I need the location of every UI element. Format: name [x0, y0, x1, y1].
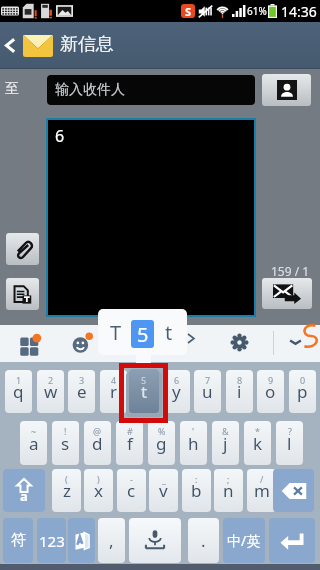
staticText: 6 [174, 374, 180, 386]
staticText: f [127, 432, 133, 455]
button[interactable]: 6 [163, 370, 190, 413]
button[interactable]: 2 [37, 370, 64, 413]
staticText: e [77, 380, 87, 403]
staticText: ? [288, 425, 292, 437]
button[interactable]: 3 [68, 370, 95, 413]
button[interactable]: ) [84, 469, 113, 512]
staticText: 5 [137, 321, 149, 348]
button[interactable]: Shift [3, 469, 45, 512]
staticText: a [20, 487, 28, 505]
staticText: v [159, 479, 168, 502]
staticText: 14:36 [281, 2, 317, 21]
button[interactable]: 5 [129, 369, 159, 413]
staticText: ' [192, 425, 195, 437]
staticText: t [141, 380, 148, 403]
staticText: r [110, 380, 118, 403]
staticText: x [94, 479, 103, 502]
button[interactable]: ? [276, 421, 303, 465]
button[interactable]: / [247, 469, 276, 512]
button[interactable]: _ [149, 469, 178, 512]
button[interactable]: % [148, 421, 175, 465]
staticText: % [158, 425, 166, 437]
button[interactable]: 0 [289, 370, 316, 413]
staticText: z [63, 479, 71, 502]
staticText: 符 [11, 531, 26, 550]
button[interactable]: Backspace [273, 469, 314, 512]
staticText: . [201, 529, 206, 552]
button[interactable]: Contacts [262, 74, 311, 106]
button[interactable]: ( [52, 469, 81, 512]
button[interactable]: Attach [6, 233, 39, 265]
staticText: ( [65, 473, 68, 485]
button[interactable]: Settings [231, 334, 248, 351]
button[interactable]: - [117, 469, 146, 512]
button[interactable]: & [212, 421, 239, 465]
staticText: 123 [39, 531, 65, 551]
button[interactable]: 9 [257, 370, 284, 413]
staticText: 7 [205, 374, 211, 386]
staticText: : [195, 473, 198, 485]
button[interactable]: 7 [194, 370, 221, 413]
staticText: 2 [48, 374, 54, 386]
button[interactable]: ! [52, 421, 79, 465]
button[interactable]: Apps [19, 333, 40, 354]
button[interactable]: ~ [20, 421, 47, 465]
button[interactable]: 5 [131, 320, 154, 348]
button[interactable]: Space [129, 518, 181, 563]
staticText: @ [93, 425, 102, 437]
staticText: i [237, 380, 242, 403]
staticText: _ [162, 473, 166, 485]
staticText: T [110, 319, 122, 346]
staticText: k [253, 432, 263, 455]
button[interactable]: # [116, 421, 143, 465]
button[interactable]: 中/英 [223, 518, 265, 563]
staticText: u [202, 380, 213, 403]
staticText: n [223, 479, 234, 502]
button[interactable]: Enter [269, 518, 315, 563]
staticText: t [165, 319, 173, 346]
button[interactable]: 1 [5, 370, 32, 413]
button[interactable]: Language [68, 518, 95, 563]
staticText: s [61, 432, 70, 455]
staticText: 9 [268, 374, 274, 386]
staticText: S [185, 4, 192, 18]
button[interactable]: @ [84, 421, 111, 465]
button[interactable]: * [244, 421, 271, 465]
staticText: c [127, 479, 136, 502]
button[interactable]: t [155, 309, 183, 355]
staticText: 1 [16, 374, 22, 386]
staticText: b [191, 479, 202, 502]
button[interactable]: 8 [226, 370, 253, 413]
staticText: - [130, 473, 133, 485]
staticText: 0 [300, 374, 306, 386]
button[interactable]: Send [262, 278, 312, 309]
staticText: 输入收件人 [55, 81, 125, 99]
staticText: / [260, 473, 264, 485]
staticText: p [297, 380, 308, 403]
staticText: ) [97, 473, 100, 485]
staticText: , [109, 529, 114, 552]
button[interactable]: Emoji [72, 332, 93, 353]
staticText: y [172, 380, 181, 403]
button[interactable]: : [182, 469, 211, 512]
button[interactable]: 4 [100, 370, 127, 413]
button[interactable]: Templates [6, 278, 39, 310]
staticText: 61% [247, 4, 267, 18]
button[interactable]: ; [214, 469, 243, 512]
staticText: l [287, 432, 292, 455]
staticText: a [29, 432, 39, 455]
button[interactable]: ' [180, 421, 207, 465]
button[interactable]: T [102, 309, 130, 355]
staticText: ~ [31, 425, 37, 437]
button[interactable]: 符 [3, 518, 33, 563]
staticText: j [223, 432, 228, 455]
button[interactable]: 123 [37, 518, 66, 563]
button[interactable]: Back [0, 22, 58, 69]
button[interactable]: 6 [48, 120, 254, 315]
button[interactable]: 输入收件人 [47, 75, 255, 105]
staticText: 5 [141, 374, 147, 386]
button[interactable]: . [188, 518, 219, 563]
button[interactable]: , [98, 518, 125, 563]
staticText: * [255, 425, 260, 437]
button[interactable]: Hide keyboard [288, 337, 303, 347]
